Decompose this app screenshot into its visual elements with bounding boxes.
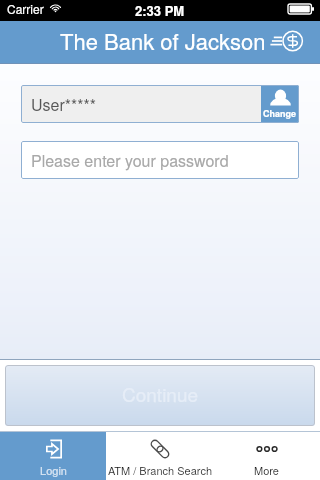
staticText: The Bank of Jackson: [60, 25, 266, 57]
staticText: Change: [263, 107, 297, 120]
button[interactable]: User*****: [21, 85, 299, 123]
other: More: [256, 439, 278, 459]
button[interactable]: More: [213, 432, 320, 480]
other: ATM / Branch Search: [149, 439, 171, 459]
staticText: Login: [40, 462, 67, 478]
staticText: ATM / Branch Search: [108, 462, 212, 478]
button[interactable]: Login: [0, 432, 106, 480]
other: Login: [43, 439, 65, 459]
staticText: More: [254, 462, 279, 478]
button[interactable]: ATM / Branch Search: [106, 432, 213, 480]
staticText: Carrier: [7, 0, 44, 17]
button[interactable]: Please enter your password: [21, 141, 299, 179]
other: Money transfer: [269, 28, 305, 54]
staticText: Continue: [122, 380, 199, 407]
staticText: User*****: [31, 93, 96, 116]
button[interactable]: Continue: [5, 365, 315, 426]
button[interactable]: Change user: [261, 85, 299, 123]
staticText: 2:33 PM: [135, 1, 185, 20]
staticText: Please enter your password: [31, 149, 229, 172]
